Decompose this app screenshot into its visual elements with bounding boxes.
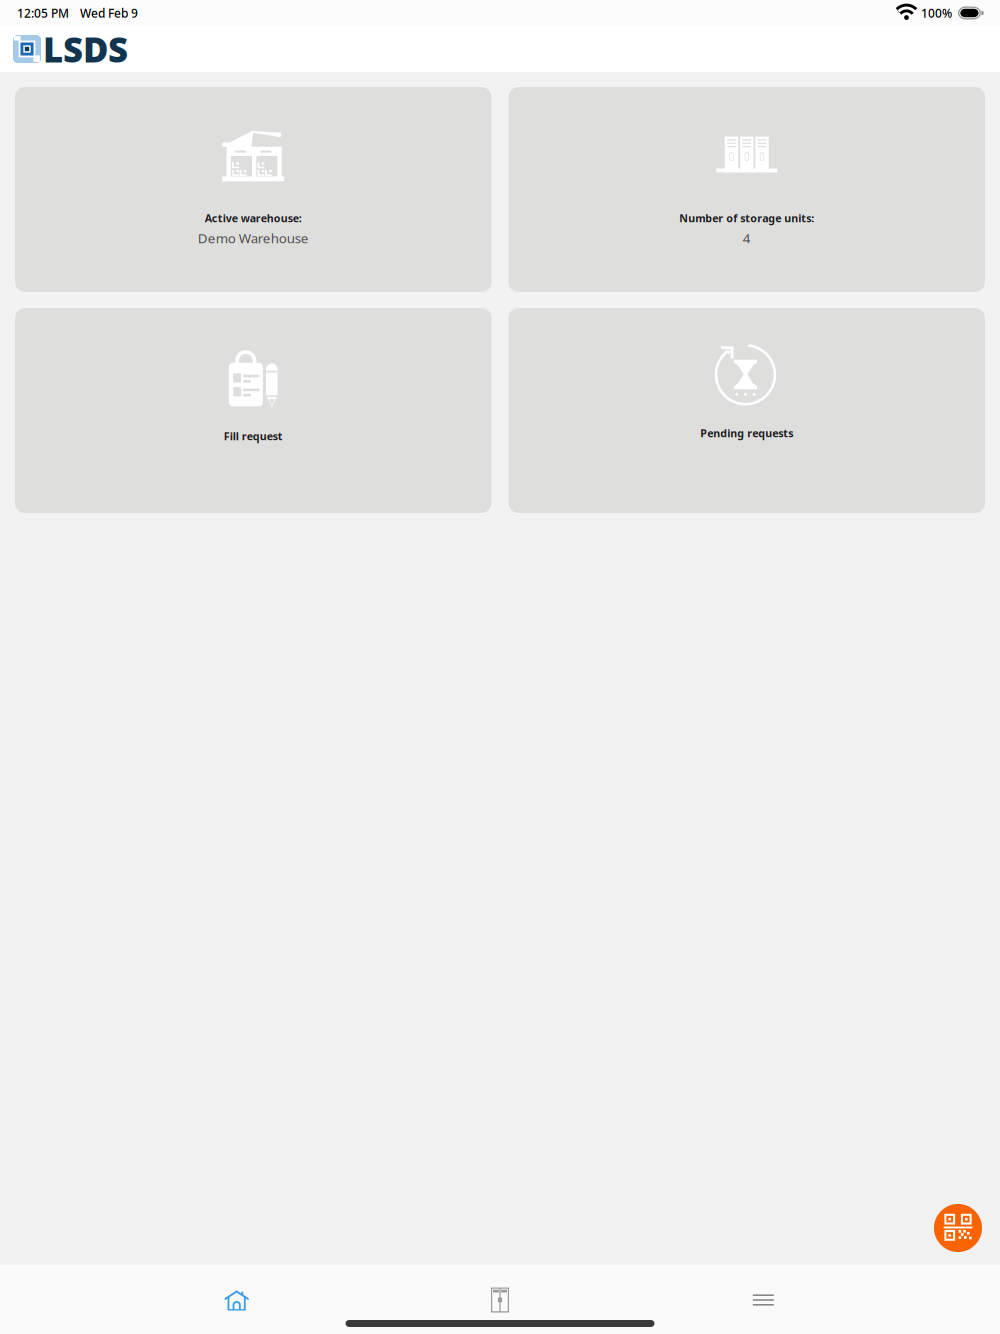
button[interactable]: Menu xyxy=(632,1287,895,1313)
staticText: Pending requests xyxy=(700,426,793,440)
staticText: 12:05 PM xyxy=(17,5,69,21)
staticText: 4 xyxy=(743,229,751,247)
button[interactable]: Pending requests xyxy=(508,308,985,513)
button[interactable]: Scan barcode xyxy=(934,1204,982,1252)
staticText: Wed Feb 9 xyxy=(80,5,138,21)
staticText: Demo Warehouse xyxy=(198,229,309,247)
button[interactable]: Number of storage units: xyxy=(508,87,985,292)
button[interactable]: Active warehouse: xyxy=(15,87,491,292)
staticText: Number of storage units: xyxy=(679,211,814,225)
staticText: Fill request xyxy=(224,429,283,443)
staticText: Active warehouse: xyxy=(205,211,302,225)
button[interactable]: Fill request xyxy=(15,308,491,513)
button[interactable]: Storage units xyxy=(368,1287,632,1313)
staticText: LSDS xyxy=(43,26,128,72)
staticText: 100% xyxy=(921,5,952,21)
button[interactable]: LSDS xyxy=(0,26,141,72)
button[interactable]: Home xyxy=(105,1287,368,1313)
